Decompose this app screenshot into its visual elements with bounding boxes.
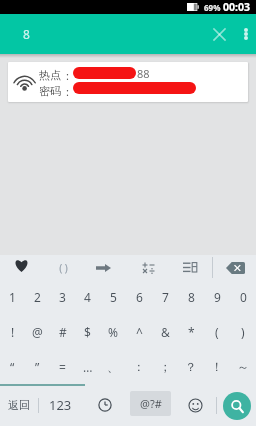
staticText: 00:03 — [223, 0, 250, 14]
button[interactable]: = — [50, 349, 75, 384]
staticText: : — [66, 84, 69, 99]
button[interactable]: 2 — [25, 280, 50, 314]
button[interactable]: 8 — [178, 280, 204, 314]
button[interactable]: # — [50, 314, 75, 349]
button[interactable]: * — [178, 314, 204, 349]
button[interactable]: ： — [126, 349, 152, 384]
staticText: 4 — [84, 289, 91, 305]
button[interactable]: Move cursor — [86, 255, 120, 280]
staticText: ～ — [237, 359, 249, 374]
button[interactable]: 9 — [204, 280, 230, 314]
staticText: 0 — [240, 289, 247, 305]
button[interactable]: @?# — [130, 391, 171, 416]
button[interactable]: ” — [25, 349, 50, 384]
staticText: & — [161, 324, 170, 340]
staticText: 123 — [49, 396, 72, 414]
staticText: 8 — [188, 289, 195, 305]
staticText: 3 — [59, 289, 66, 305]
button[interactable]: More options — [235, 14, 256, 54]
button[interactable]: Favourites — [4, 255, 39, 280]
button[interactable]: ？ — [178, 349, 204, 384]
staticText: 密码 — [39, 84, 61, 98]
staticText: 69% — [204, 2, 221, 13]
staticText: 返回 — [8, 398, 30, 412]
button[interactable]: 4 — [75, 280, 100, 314]
staticText: 热点 — [39, 68, 61, 82]
button[interactable]: ) — [230, 314, 256, 349]
button[interactable]: … — [75, 349, 100, 384]
button[interactable]: @ — [25, 314, 50, 349]
staticText: 9 — [214, 289, 221, 305]
button[interactable]: 5 — [100, 280, 126, 314]
button[interactable]: ^ — [126, 314, 152, 349]
button[interactable]: & — [152, 314, 178, 349]
staticText: ! — [11, 324, 15, 340]
staticText: % — [108, 324, 118, 340]
staticText: @ — [32, 324, 43, 340]
button[interactable]: 、 — [100, 349, 126, 384]
button[interactable]: ! — [0, 314, 25, 349]
staticText: 2 — [34, 289, 41, 305]
button[interactable]: Math symbols — [131, 255, 165, 280]
staticText: “ — [10, 359, 15, 375]
staticText: ^ — [136, 324, 143, 340]
staticText: : — [66, 68, 69, 83]
staticText: … — [83, 359, 93, 375]
button[interactable]: Recent — [86, 385, 124, 425]
staticText: * — [188, 324, 195, 340]
staticText: # — [59, 324, 67, 340]
staticText: 88 — [137, 66, 150, 81]
button[interactable]: Close — [205, 14, 234, 54]
staticText: ( ) — [59, 261, 68, 275]
button[interactable]: 返回 — [0, 385, 38, 425]
button[interactable]: “ — [0, 349, 25, 384]
staticText: 1 — [9, 289, 16, 305]
button[interactable]: Formatting — [173, 255, 207, 280]
button[interactable]: ( ) — [45, 255, 81, 280]
staticText: ： — [133, 359, 145, 374]
staticText: ” — [35, 359, 40, 375]
staticText: ； — [159, 359, 171, 374]
staticText: ) — [241, 324, 245, 340]
button[interactable]: ～ — [230, 349, 256, 384]
button[interactable]: 6 — [126, 280, 152, 314]
button[interactable]: Search — [217, 384, 256, 426]
staticText: @?# — [140, 396, 162, 411]
staticText: ？ — [185, 359, 197, 374]
staticText: 6 — [136, 289, 143, 305]
staticText: = — [59, 359, 66, 375]
button[interactable]: 123 — [39, 385, 81, 425]
button[interactable]: % — [100, 314, 126, 349]
staticText: ！ — [211, 359, 223, 374]
button[interactable]: 3 — [50, 280, 75, 314]
button[interactable]: ； — [152, 349, 178, 384]
staticText: ( — [215, 324, 219, 340]
staticText: 、 — [107, 359, 119, 374]
button[interactable]: Backspace — [216, 255, 254, 280]
button[interactable]: 0 — [230, 280, 256, 314]
button[interactable]: 1 — [0, 280, 25, 314]
button[interactable]: $ — [75, 314, 100, 349]
button[interactable]: ！ — [204, 349, 230, 384]
staticText: 8 — [23, 26, 30, 42]
staticText: 5 — [110, 289, 117, 305]
button[interactable]: ( — [204, 314, 230, 349]
staticText: $ — [84, 324, 91, 340]
button[interactable]: 7 — [152, 280, 178, 314]
staticText: 7 — [162, 289, 169, 305]
button[interactable]: Emoji — [178, 385, 212, 425]
